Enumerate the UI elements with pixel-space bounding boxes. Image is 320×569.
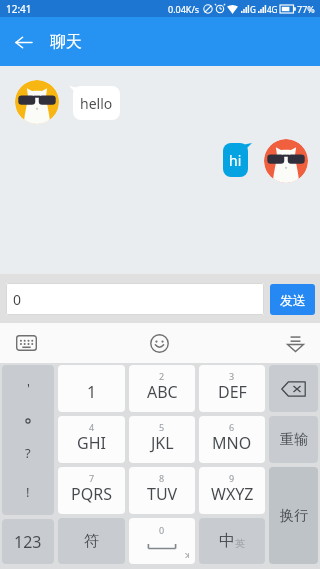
staticText: ' <box>27 379 30 397</box>
staticText: 符 <box>84 532 99 551</box>
staticText: ? <box>25 444 31 462</box>
staticText: 7 <box>89 472 95 484</box>
button[interactable]: Hide keyboard <box>270 323 320 363</box>
staticText: 4G <box>267 4 278 15</box>
button[interactable]: 1 <box>58 365 125 412</box>
button[interactable]: 9 <box>199 467 265 514</box>
staticText: TUV <box>147 483 178 505</box>
staticText: 换行 <box>280 507 308 525</box>
button[interactable]: 符 <box>58 518 125 564</box>
button[interactable]: 6 <box>199 416 265 463</box>
button[interactable]: 5 <box>129 416 195 463</box>
staticText: ꓘ <box>185 552 190 560</box>
button[interactable]: Avatar <box>15 80 59 124</box>
staticText: 6 <box>229 421 235 433</box>
staticText: DEF <box>218 381 247 403</box>
staticText: 4 <box>89 421 95 433</box>
button[interactable]: 换行 <box>269 467 318 564</box>
button[interactable]: Backspace <box>269 365 318 412</box>
staticText: 1 <box>87 381 97 403</box>
button[interactable]: 123 <box>2 519 54 564</box>
button[interactable]: 8 <box>129 467 195 514</box>
staticText: 8 <box>159 472 165 484</box>
staticText: 0 <box>159 524 165 536</box>
button[interactable]: 发送 <box>270 284 315 315</box>
other: Backspace <box>281 381 306 397</box>
staticText: hi <box>229 151 242 170</box>
button[interactable]: 7 <box>58 467 125 514</box>
staticText: 0 <box>13 290 22 309</box>
staticText: 77% <box>297 3 315 15</box>
staticText: MNO <box>212 432 252 454</box>
button[interactable]: Avatar <box>264 139 308 183</box>
staticText: JKL <box>151 432 174 454</box>
button[interactable]: hi <box>223 143 248 177</box>
button[interactable]: 0 <box>6 283 264 315</box>
button[interactable]: 3 <box>199 365 265 412</box>
button[interactable]: ' <box>2 365 54 515</box>
staticText: PQRS <box>71 483 112 505</box>
button[interactable]: 重输 <box>269 416 318 463</box>
staticText: WXYZ <box>211 483 254 505</box>
staticText: 中 <box>219 531 235 551</box>
button[interactable]: 2 <box>129 365 195 412</box>
staticText: ! <box>26 483 30 501</box>
button[interactable]: Emoji <box>52 323 266 363</box>
staticText: 重输 <box>280 431 308 449</box>
staticText: G <box>250 4 256 15</box>
staticText: 聊天 <box>50 32 82 52</box>
button[interactable]: Back <box>6 24 42 60</box>
button[interactable]: Keyboard <box>0 323 52 363</box>
staticText: 3 <box>229 370 235 382</box>
staticText: hello <box>80 94 113 113</box>
button[interactable]: hello <box>73 86 120 120</box>
button[interactable]: 中 <box>199 518 265 564</box>
staticText: 发送 <box>280 292 306 308</box>
button[interactable]: 0 <box>129 518 195 564</box>
button[interactable]: 4 <box>58 416 125 463</box>
staticText: 123 <box>14 531 42 553</box>
staticText: ABC <box>147 381 178 403</box>
staticText: 英 <box>235 537 245 550</box>
staticText: 0.04K/s <box>168 3 200 15</box>
staticText: GHI <box>77 432 106 454</box>
staticText: 9 <box>229 472 235 484</box>
staticText: 12:41 <box>6 2 32 16</box>
staticText: 5 <box>159 421 165 433</box>
staticText: 2 <box>159 370 165 382</box>
